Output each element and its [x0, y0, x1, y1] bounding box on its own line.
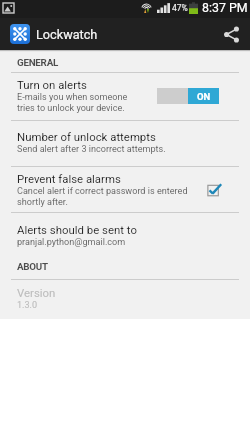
staticText: 8:37 PM	[202, 0, 248, 15]
button[interactable]: Turn on alerts	[0, 73, 250, 120]
staticText: pranjal.python@gmail.com	[17, 237, 126, 248]
staticText: Prevent false alarms	[17, 172, 121, 185]
staticText: Cancel alert if correct password is ente…	[17, 186, 188, 207]
staticText: Lockwatch	[36, 27, 98, 42]
staticText: 1.3.0	[17, 300, 38, 311]
staticText: GENERAL	[17, 57, 59, 68]
button[interactable]: Share	[215, 18, 247, 50]
staticText: Turn on alerts	[17, 78, 87, 91]
staticText: Number of unlock attempts	[17, 130, 156, 143]
button[interactable]: Lockwatch icon	[10, 24, 30, 44]
button[interactable]: Alerts should be sent to	[0, 213, 250, 254]
staticText: ABOUT	[17, 261, 48, 272]
staticText: 47%	[172, 3, 188, 13]
button[interactable]: Number of unlock attempts	[0, 121, 250, 166]
staticText: ON	[197, 91, 211, 102]
button[interactable]: Prevent false alarms	[0, 167, 250, 212]
button[interactable]: Turn on alerts	[157, 88, 219, 104]
button[interactable]: Prevent false alarms	[204, 180, 224, 200]
staticText: Alerts should be sent to	[17, 223, 137, 236]
staticText: Version	[17, 286, 56, 299]
staticText: Send alert after 3 incorrect attempts.	[17, 144, 166, 155]
button[interactable]: Version	[0, 280, 250, 319]
staticText: E-mails you when someone tries to unlock…	[17, 92, 128, 113]
